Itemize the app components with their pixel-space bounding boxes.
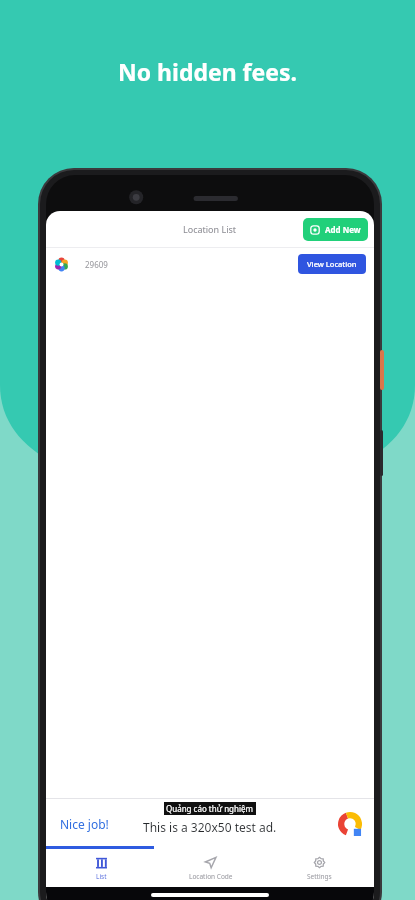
staticText: Settings	[307, 872, 332, 881]
staticText: Location List	[183, 223, 237, 235]
button[interactable]: Settings	[265, 849, 374, 887]
button[interactable]: 29609	[46, 248, 374, 280]
staticText: No hidden fees.	[118, 56, 297, 87]
staticText: List	[96, 872, 107, 881]
button[interactable]: Nice job!	[46, 799, 374, 849]
staticText: Location Code	[189, 872, 233, 881]
staticText: Quảng cáo thử nghiệm	[166, 803, 254, 814]
button[interactable]: Add New	[303, 218, 368, 241]
button[interactable]: Location Code	[156, 849, 265, 887]
staticText: Add New	[325, 224, 361, 235]
button[interactable]: List	[46, 849, 156, 887]
staticText: This is a 320x50 test ad.	[143, 819, 277, 835]
staticText: Nice job!	[60, 816, 109, 832]
staticText: 29609	[85, 259, 108, 270]
staticText: View Location	[307, 259, 357, 269]
button[interactable]: View Location	[298, 254, 366, 274]
